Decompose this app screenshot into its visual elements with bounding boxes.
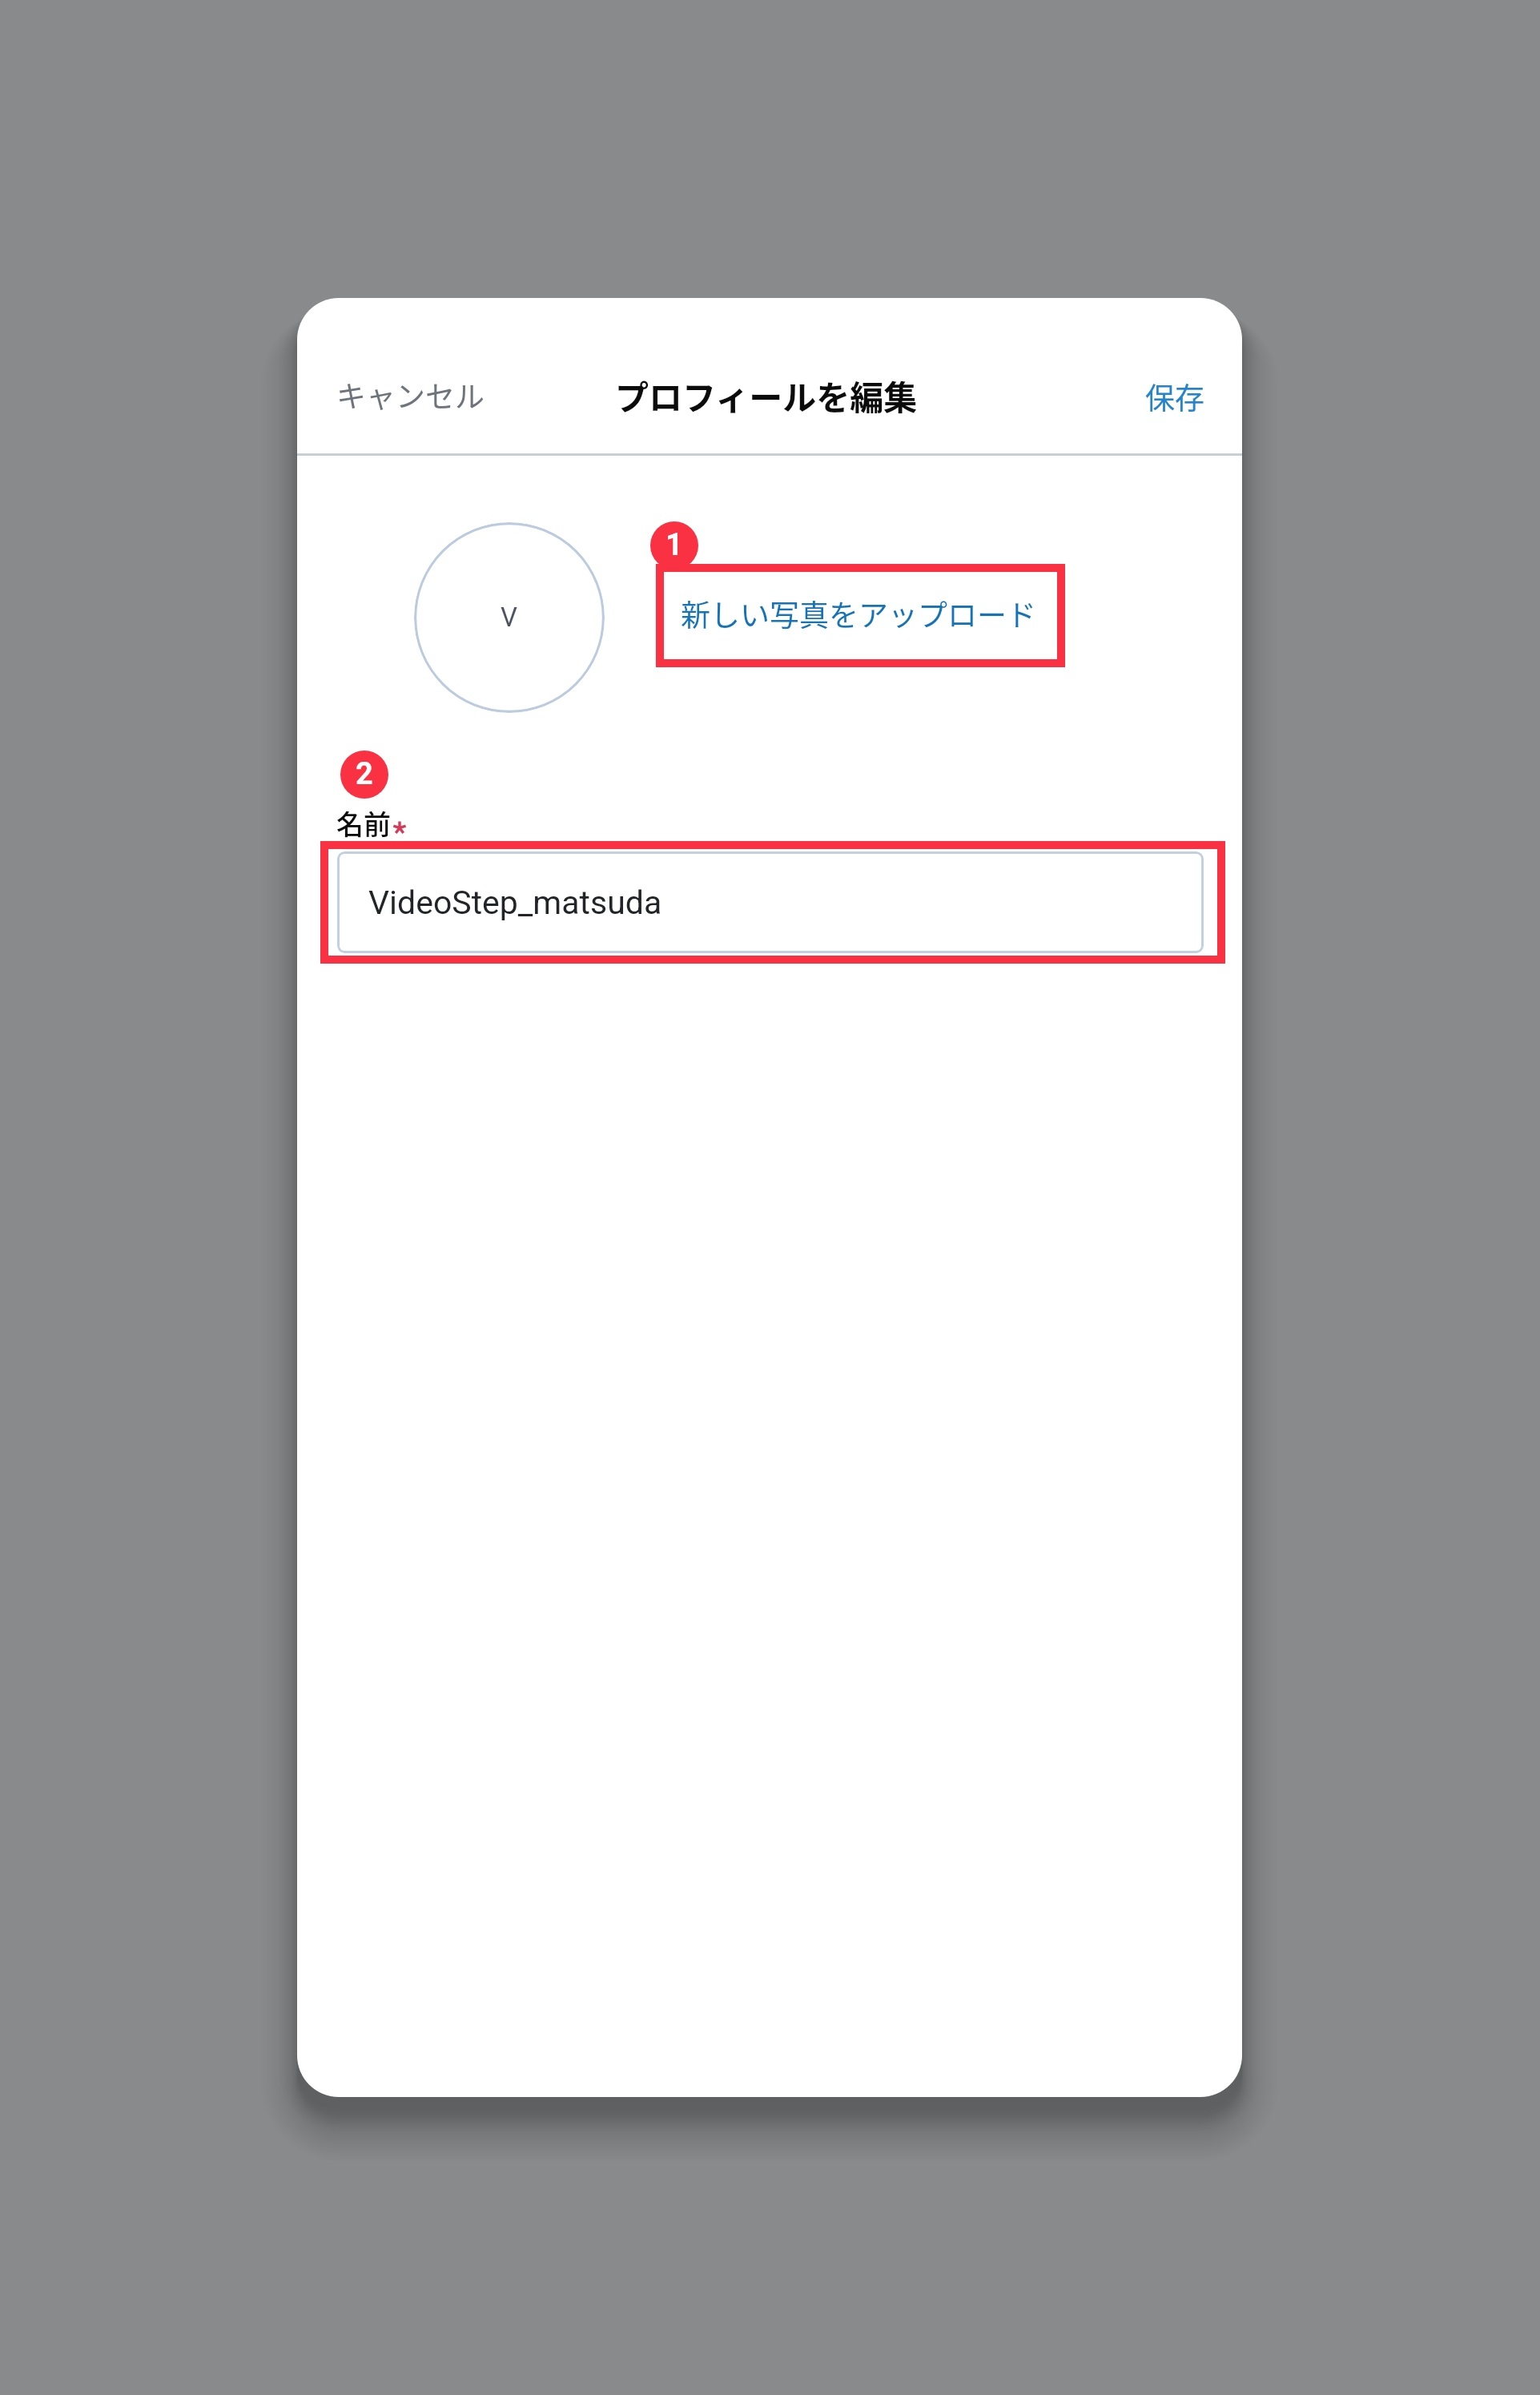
staticText: V bbox=[501, 602, 518, 633]
button[interactable]: VideoStep_matsuda bbox=[337, 851, 1204, 953]
button[interactable]: 保存 bbox=[1121, 359, 1228, 434]
staticText: 名前 bbox=[336, 803, 391, 843]
staticText: VideoStep_matsuda bbox=[368, 884, 662, 922]
staticText: プロフィールを編集 bbox=[615, 371, 918, 420]
button[interactable]: プロフィール写真 bbox=[414, 522, 605, 713]
staticText: 1 bbox=[665, 527, 683, 563]
button[interactable]: 新しい写真をアップロード bbox=[669, 582, 1047, 645]
staticText: 新しい写真をアップロード bbox=[681, 592, 1036, 635]
staticText: 保存 bbox=[1145, 375, 1204, 418]
staticText: キャンセル bbox=[336, 373, 485, 417]
staticText: 2 bbox=[356, 756, 373, 792]
button[interactable]: キャンセル bbox=[312, 357, 509, 433]
